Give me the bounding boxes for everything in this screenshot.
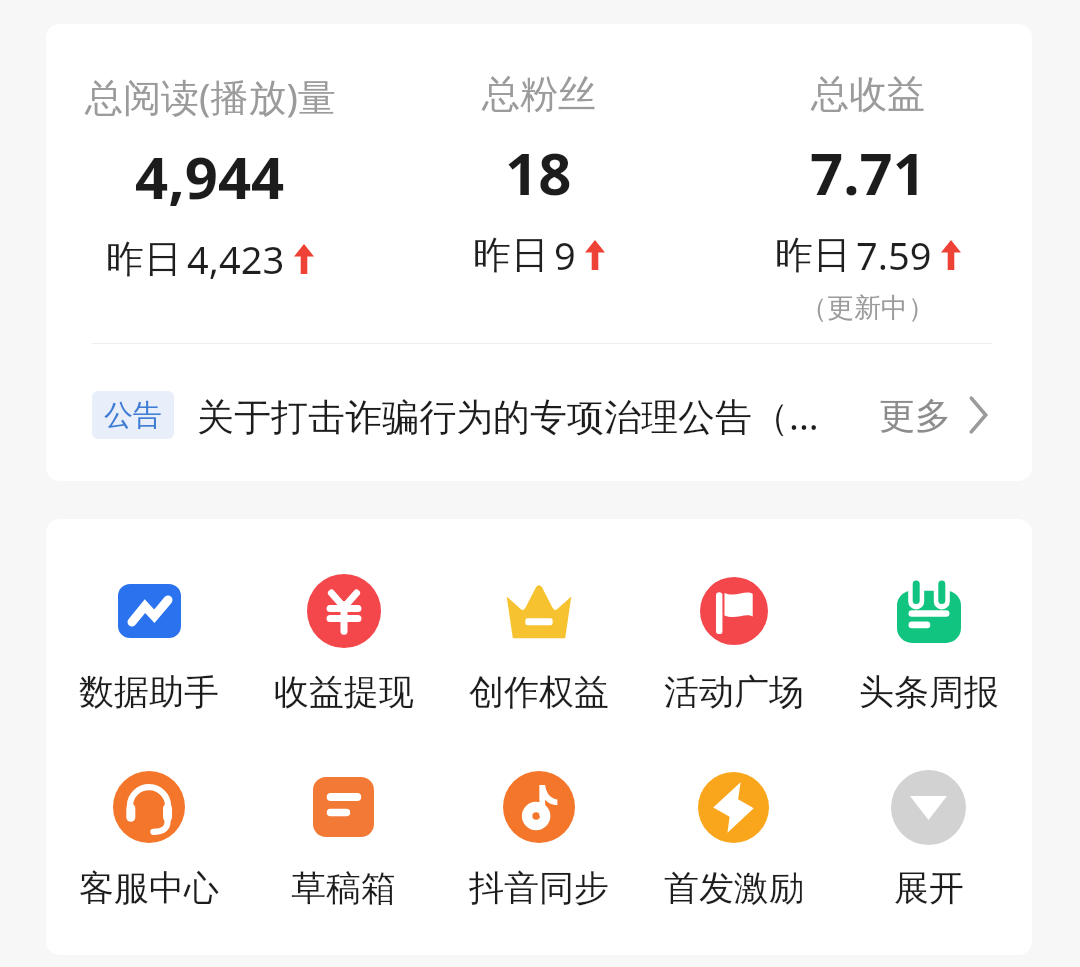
staticText: 展开 bbox=[894, 866, 964, 910]
staticText: 昨日 bbox=[473, 231, 549, 279]
staticText: 数据助手 bbox=[79, 670, 219, 714]
staticText: 公告 bbox=[104, 397, 162, 434]
staticText: 7.71 bbox=[810, 133, 926, 212]
button[interactable]: 头条周报 bbox=[831, 573, 1026, 714]
staticText: 昨日 bbox=[775, 231, 851, 279]
button[interactable]: 首发激励 bbox=[636, 769, 831, 910]
staticText: 头条周报 bbox=[859, 670, 999, 714]
button[interactable]: 活动广场 bbox=[636, 573, 831, 714]
staticText: 9 bbox=[554, 229, 576, 281]
staticText: 客服中心 bbox=[79, 866, 219, 910]
staticText: （更新中） bbox=[800, 291, 935, 325]
staticText: 活动广场 bbox=[664, 670, 804, 714]
staticText: 总粉丝 bbox=[482, 70, 596, 118]
button[interactable]: 客服中心 bbox=[52, 769, 246, 910]
button[interactable]: 展开 bbox=[831, 769, 1026, 910]
staticText: 更多 bbox=[879, 393, 951, 438]
staticText: 草稿箱 bbox=[291, 866, 396, 910]
staticText: 抖音同步 bbox=[469, 866, 609, 910]
button[interactable]: 抖音同步 bbox=[441, 769, 636, 910]
staticText: 4,423 bbox=[187, 233, 285, 285]
staticText: 关于打击诈骗行为的专项治理公告（... bbox=[197, 390, 871, 441]
staticText: 昨日 bbox=[106, 235, 182, 283]
button[interactable]: 收益提现 bbox=[246, 573, 441, 714]
button[interactable]: 草稿箱 bbox=[246, 769, 441, 910]
button[interactable]: 公告 bbox=[46, 349, 1032, 481]
staticText: 创作权益 bbox=[469, 670, 609, 714]
staticText: 收益提现 bbox=[274, 670, 414, 714]
other: More announcements bbox=[969, 397, 988, 433]
staticText: 4,944 bbox=[135, 137, 285, 216]
staticText: 首发激励 bbox=[664, 866, 804, 910]
staticText: 18 bbox=[505, 133, 572, 212]
button[interactable]: 创作权益 bbox=[441, 573, 636, 714]
staticText: 总收益 bbox=[811, 70, 925, 118]
button[interactable]: 数据助手 bbox=[52, 573, 246, 714]
staticText: 7.59 bbox=[856, 229, 932, 281]
staticText: 总阅读(播放)量 bbox=[85, 70, 336, 122]
